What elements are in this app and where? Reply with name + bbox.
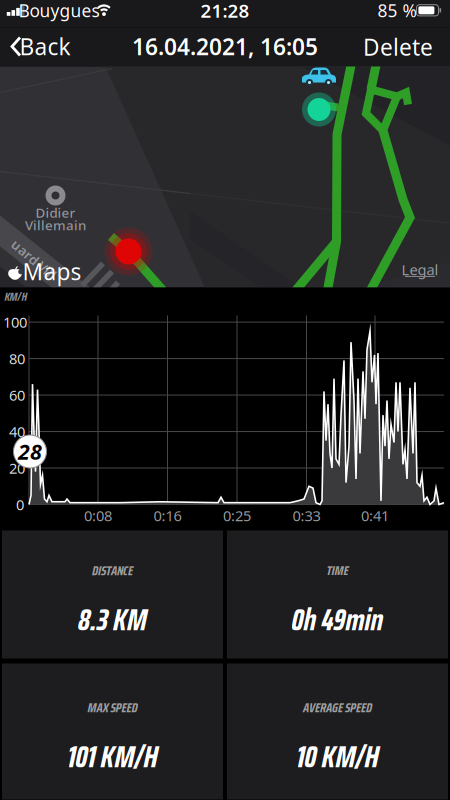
staticText: 0h 49min (291, 595, 383, 644)
staticText: 85 % (377, 0, 416, 22)
staticText: 101 KM/H (67, 732, 157, 781)
staticText: 0:33 (292, 506, 320, 525)
button[interactable]: Maps (2, 258, 86, 284)
staticText: Legal (401, 260, 438, 279)
staticText: DISTANCE (92, 560, 133, 581)
staticText: Delete (363, 32, 433, 62)
staticText: 28 (18, 437, 42, 466)
staticText: 0:25 (223, 506, 251, 525)
staticText: 100 (3, 312, 27, 332)
staticText: TIME (326, 560, 348, 581)
staticText: 0:16 (153, 506, 181, 525)
staticText: Bouygues (18, 0, 99, 22)
staticText: 0:41 (361, 506, 389, 525)
staticText: 80 (9, 349, 25, 368)
staticText: AVERAGE SPEED (303, 697, 372, 718)
button[interactable]: Legal (400, 262, 440, 278)
staticText: 40 (9, 422, 25, 441)
staticText: Back (19, 31, 70, 61)
staticText: Villemain (25, 216, 86, 234)
staticText: uard Vill (7, 251, 61, 268)
staticText: 21:28 (200, 0, 249, 23)
staticText: 60 (9, 385, 25, 405)
button[interactable]: Delete (358, 27, 438, 66)
staticText: Didier (35, 204, 75, 221)
staticText: 10 KM/H (296, 732, 378, 781)
button[interactable]: Back (0, 27, 80, 66)
staticText: 0 (16, 495, 24, 514)
staticText: 16.04.2021, 16:05 (132, 31, 318, 61)
staticText: Maps (22, 256, 81, 286)
staticText: 8.3 KM (78, 595, 147, 644)
staticText: 20 (9, 458, 25, 478)
staticText: MAX SPEED (87, 697, 137, 718)
staticText: 0:08 (84, 506, 112, 525)
staticText: KM/H (4, 287, 27, 306)
